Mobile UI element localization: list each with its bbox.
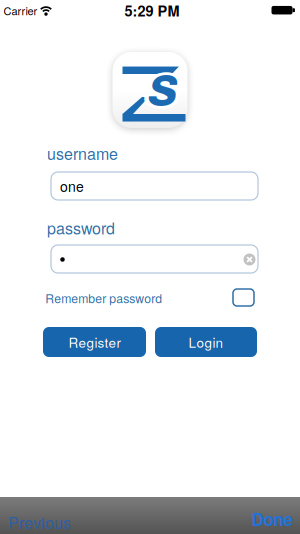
button[interactable]: Login (155, 327, 257, 357)
staticText: Register (68, 332, 120, 352)
button[interactable]: Previous (4, 510, 75, 533)
staticText: s (150, 42, 180, 119)
staticText: s (147, 44, 177, 122)
staticText: s (145, 42, 175, 119)
staticText: Done (251, 507, 292, 531)
staticText: 5:29 PM (124, 0, 179, 21)
staticText: s (147, 42, 177, 119)
staticText: s (150, 44, 180, 122)
staticText: Carrier (3, 3, 37, 18)
button[interactable] (51, 245, 258, 273)
staticText: Login (188, 332, 223, 352)
staticText: Previous (8, 510, 71, 533)
button[interactable]: Clear text (243, 253, 255, 265)
staticText: s (147, 47, 177, 124)
button[interactable]: Register (43, 327, 146, 357)
staticText: s (143, 46, 173, 123)
staticText: s (150, 47, 180, 124)
staticText: s (143, 43, 173, 120)
button[interactable]: Remember password (233, 289, 254, 306)
button[interactable]: one (51, 172, 258, 200)
staticText: username (47, 141, 118, 164)
staticText: password (47, 216, 115, 239)
staticText: Remember password (45, 289, 162, 307)
button[interactable]: Done (247, 507, 296, 531)
staticText: s (145, 47, 175, 124)
staticText: s (145, 44, 175, 122)
staticText: one (60, 176, 84, 196)
